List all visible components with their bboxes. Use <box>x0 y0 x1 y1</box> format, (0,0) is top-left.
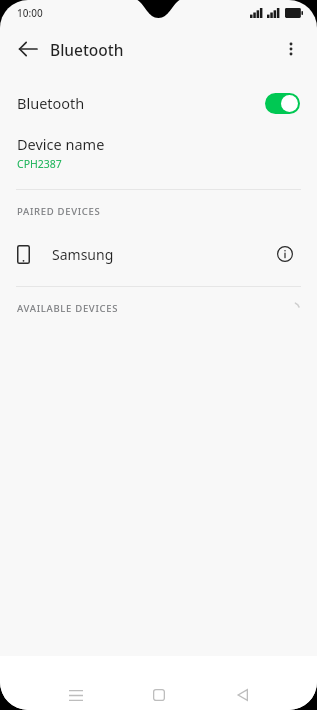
button[interactable]: Device name <box>0 126 317 175</box>
staticText: PAIRED DEVICES <box>17 205 101 218</box>
staticText: Samsung <box>52 245 114 264</box>
button[interactable]: Bluetooth <box>0 80 317 126</box>
button[interactable]: Device settings <box>270 239 300 269</box>
button[interactable]: Back <box>8 29 48 69</box>
staticText: Bluetooth <box>50 39 124 60</box>
staticText: Bluetooth <box>17 93 85 113</box>
button[interactable]: Samsung <box>0 232 317 276</box>
staticText: 10:00 <box>17 6 43 20</box>
button[interactable]: Bluetooth on <box>265 93 300 114</box>
button[interactable]: More options <box>271 29 311 69</box>
button[interactable]: Home <box>142 680 176 710</box>
staticText: AVAILABLE DEVICES <box>17 302 119 315</box>
staticText: CPH2387 <box>17 157 62 171</box>
button[interactable]: Recent apps <box>59 680 93 710</box>
staticText: Device name <box>17 134 105 154</box>
button[interactable]: Back <box>225 680 259 710</box>
